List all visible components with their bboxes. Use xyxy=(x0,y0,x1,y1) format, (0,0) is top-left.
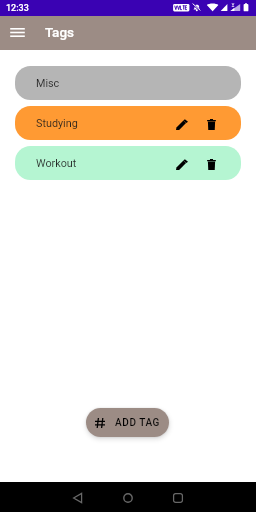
button[interactable]: Edit Workout xyxy=(171,152,193,174)
button[interactable]: Back xyxy=(54,483,102,512)
staticText: 12:33 xyxy=(6,3,29,14)
button[interactable]: Delete Workout xyxy=(200,152,222,174)
staticText: Studying xyxy=(36,117,78,130)
button[interactable]: Open navigation menu xyxy=(0,16,34,50)
button[interactable]: Workout xyxy=(15,146,241,180)
staticText: Workout xyxy=(36,157,77,170)
button[interactable]: Misc xyxy=(15,66,241,100)
button[interactable]: Home xyxy=(104,483,152,512)
staticText: Misc xyxy=(36,77,60,90)
button[interactable]: Edit Studying xyxy=(171,112,193,134)
button[interactable]: Studying xyxy=(15,106,241,140)
button[interactable]: Recent apps xyxy=(154,483,202,512)
button[interactable]: ADD TAG xyxy=(86,408,169,437)
button[interactable]: Delete Studying xyxy=(200,112,222,134)
staticText: ADD TAG xyxy=(115,417,160,429)
staticText: Tags xyxy=(45,24,75,40)
